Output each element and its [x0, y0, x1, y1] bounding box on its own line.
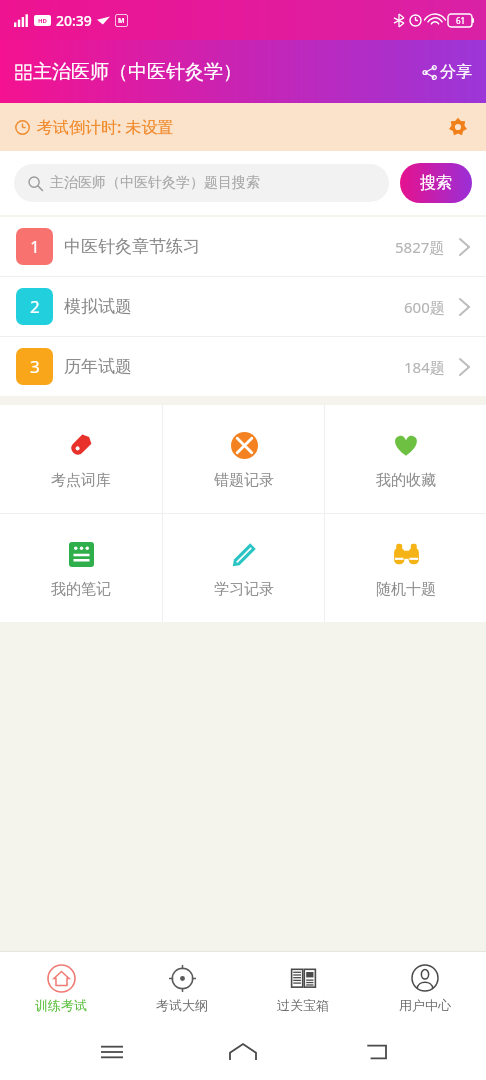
- staticText: HD: [38, 17, 47, 25]
- button[interactable]: 考试大纲: [121, 952, 242, 1024]
- staticText: 5827题: [395, 237, 445, 257]
- staticText: 模拟试题: [64, 296, 132, 317]
- button[interactable]: Home: [223, 1032, 263, 1072]
- staticText: M: [118, 16, 125, 26]
- staticText: 过关宝箱: [277, 997, 329, 1013]
- staticText: 训练考试: [35, 997, 87, 1013]
- button[interactable]: 1: [0, 217, 486, 276]
- button[interactable]: 学习记录: [163, 514, 324, 622]
- staticText: 主治医师（中医针灸学）题目搜索: [50, 174, 260, 192]
- button[interactable]: 考试倒计时: 未设置: [0, 103, 486, 151]
- staticText: 我的收藏: [376, 471, 436, 490]
- staticText: 搜索: [420, 173, 452, 193]
- staticText: 考点词库: [51, 471, 111, 490]
- staticText: 学习记录: [214, 580, 274, 599]
- button[interactable]: 训练考试: [0, 952, 121, 1024]
- staticText: 61: [456, 15, 466, 26]
- staticText: 主治医师（中医针灸学）: [33, 60, 242, 84]
- button[interactable]: 2: [0, 277, 486, 336]
- button[interactable]: 我的笔记: [0, 514, 162, 622]
- button[interactable]: 搜索: [400, 163, 472, 203]
- staticText: 2: [30, 295, 40, 318]
- staticText: 分享: [440, 62, 472, 82]
- button[interactable]: 分享: [422, 62, 472, 82]
- staticText: 我的笔记: [51, 580, 111, 599]
- button[interactable]: 主治医师（中医针灸学）: [16, 60, 242, 84]
- staticText: 600题: [404, 297, 445, 317]
- button[interactable]: 过关宝箱: [242, 952, 364, 1024]
- staticText: 3: [30, 355, 40, 378]
- button[interactable]: 我的收藏: [325, 405, 486, 513]
- button[interactable]: 用户中心: [364, 952, 486, 1024]
- button[interactable]: 错题记录: [163, 405, 324, 513]
- staticText: 1: [30, 235, 40, 258]
- button[interactable]: 随机十题: [325, 514, 486, 622]
- button[interactable]: 3: [0, 337, 486, 396]
- staticText: 错题记录: [214, 471, 274, 490]
- staticText: 历年试题: [64, 356, 132, 377]
- button[interactable]: Back: [355, 1032, 395, 1072]
- staticText: 184题: [404, 357, 445, 377]
- button[interactable]: 设置: [446, 115, 470, 139]
- button[interactable]: 主治医师（中医针灸学）题目搜索: [14, 164, 389, 202]
- staticText: 20:39: [56, 11, 92, 30]
- staticText: 中医针灸章节练习: [64, 236, 200, 257]
- staticText: 随机十题: [376, 580, 436, 599]
- staticText: 考试倒计时: 未设置: [37, 116, 174, 138]
- staticText: 用户中心: [399, 997, 451, 1013]
- button[interactable]: Recents: [92, 1032, 132, 1072]
- staticText: 考试大纲: [156, 997, 208, 1013]
- button[interactable]: 考点词库: [0, 405, 162, 513]
